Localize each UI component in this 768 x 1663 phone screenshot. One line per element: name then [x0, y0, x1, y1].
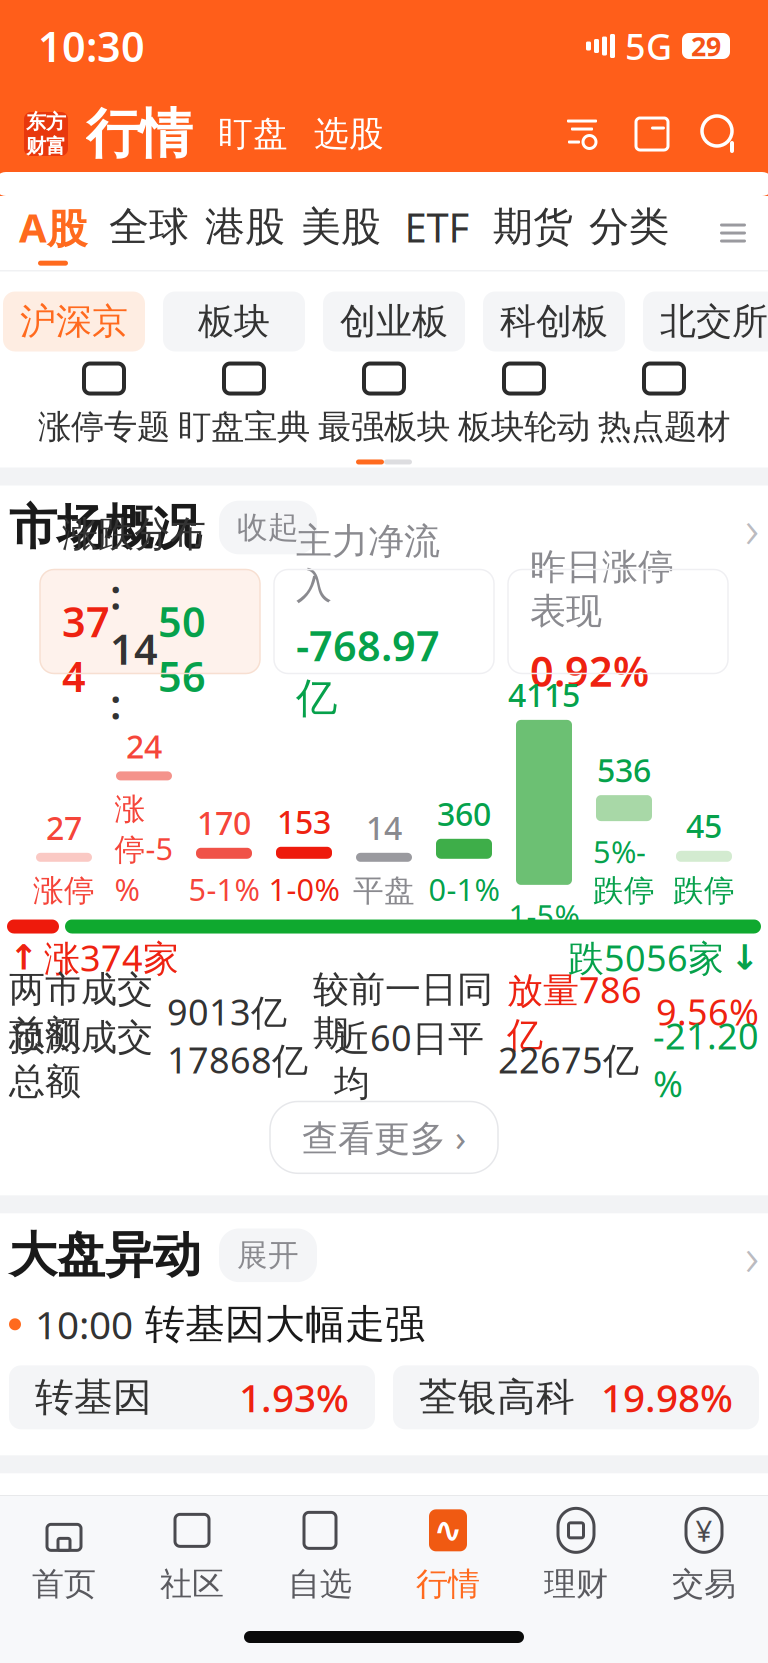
staticText: 153: [277, 800, 331, 843]
staticText: 选股: [314, 113, 384, 155]
button[interactable]: 首页: [0, 1506, 128, 1602]
staticText: 19.98%: [601, 1372, 733, 1423]
staticText: 14: [366, 806, 402, 849]
staticText: 期货: [493, 202, 573, 251]
staticText: :14:: [110, 566, 158, 731]
button[interactable]: 社区: [128, 1506, 256, 1602]
staticText: 5056: [158, 594, 206, 703]
button[interactable]: 港股: [197, 196, 293, 270]
button[interactable]: 大盘异动: [0, 1213, 768, 1297]
staticText: 创业板: [340, 299, 448, 344]
staticText: 沪深京: [20, 299, 128, 344]
button[interactable]: 主力净流入: [274, 569, 494, 673]
button[interactable]: 市场概况: [0, 485, 768, 569]
staticText: 主力净流入: [296, 519, 440, 608]
staticText: ∿: [433, 1511, 462, 1550]
staticText: 0.92%: [530, 643, 649, 698]
staticText: 展开: [237, 1236, 299, 1274]
button[interactable]: 北交所: [643, 291, 768, 351]
staticText: -768.97亿: [296, 618, 440, 724]
staticText: 涨跌分布: [62, 512, 206, 556]
staticText: 536: [597, 749, 651, 791]
staticText: 较前一日同期: [313, 967, 493, 1056]
staticText: ›: [745, 492, 759, 563]
staticText: 自选: [288, 1564, 352, 1604]
button[interactable]: 选股: [288, 113, 384, 155]
button[interactable]: 美股: [293, 196, 389, 270]
button[interactable]: 行业板块: [0, 1473, 768, 1569]
staticText: 盯盘宝典: [178, 406, 310, 447]
button[interactable]: 板块: [163, 291, 305, 351]
staticText: 交易: [672, 1564, 736, 1604]
staticText: 4115: [508, 673, 580, 716]
staticText: 科创板: [500, 299, 608, 344]
button[interactable]: 自选: [256, 1506, 384, 1602]
button[interactable]: 创业板: [323, 291, 465, 351]
button[interactable]: ETF: [389, 196, 485, 270]
staticText: 5%-跌停: [593, 831, 655, 909]
staticText: 荃银高科: [419, 1374, 575, 1421]
button[interactable]: 昨日涨停表现: [508, 569, 728, 673]
staticText: 5-1%: [188, 869, 259, 909]
staticText: 收起: [237, 509, 299, 546]
staticText: 29: [691, 28, 721, 64]
staticText: 行业板块: [9, 1492, 201, 1551]
staticText: 22675亿: [498, 1036, 639, 1083]
staticText: 涨停专题: [38, 406, 170, 447]
staticText: 45: [686, 804, 722, 847]
staticText: 转基因大幅走强: [145, 1300, 425, 1349]
button[interactable]: 行情: [68, 101, 192, 167]
staticText: 分类: [589, 202, 669, 251]
button[interactable]: 更多分类: [707, 196, 759, 270]
staticText: 1-0%: [268, 869, 339, 909]
button[interactable]: 盯盘: [192, 113, 288, 155]
button[interactable]: 涨停专题: [34, 360, 174, 447]
button[interactable]: 期货: [485, 196, 581, 270]
staticText: 行情: [86, 101, 192, 167]
button[interactable]: 板块轮动: [454, 360, 594, 447]
staticText: 374: [62, 594, 110, 703]
button[interactable]: 搜索: [676, 110, 744, 158]
staticText: A股: [19, 200, 87, 254]
staticText: 涨374家: [44, 934, 179, 981]
button[interactable]: 分享: [606, 110, 676, 158]
button[interactable]: 查看更多 ›: [270, 1101, 498, 1173]
staticText: 10:30: [38, 19, 145, 73]
staticText: 9.56%: [656, 988, 759, 1035]
button[interactable]: ¥: [640, 1506, 768, 1602]
button[interactable]: 科创板: [483, 291, 625, 351]
staticText: 17868亿: [167, 1036, 308, 1083]
button[interactable]: 盯盘宝典: [174, 360, 314, 447]
staticText: 9013亿: [167, 988, 287, 1035]
staticText: 全球: [109, 202, 189, 251]
staticText: ›: [745, 1220, 759, 1291]
button[interactable]: 最强板块: [314, 360, 454, 447]
button[interactable]: 东方财富: [24, 112, 68, 156]
staticText: 10:00: [35, 1299, 133, 1350]
staticText: 热点题材: [598, 406, 730, 447]
staticText: 放量786亿: [507, 965, 642, 1057]
staticText: 大盘异动: [9, 1226, 201, 1285]
staticText: 1.93%: [239, 1372, 349, 1423]
button[interactable]: 荃银高科: [393, 1365, 759, 1429]
button[interactable]: 涨跌分布: [40, 569, 260, 673]
staticText: ↑: [9, 938, 38, 977]
button[interactable]: 转基因: [9, 1365, 375, 1429]
button[interactable]: 热点题材: [594, 360, 734, 447]
button[interactable]: 沪深京: [3, 291, 145, 351]
button[interactable]: A股: [5, 196, 101, 270]
staticText: 市场概况: [9, 498, 201, 557]
staticText: 东方: [26, 109, 66, 134]
staticText: 170: [197, 801, 251, 844]
staticText: 0-1%: [428, 869, 499, 909]
staticText: 两市成交总额: [9, 967, 153, 1056]
button[interactable]: 分类: [581, 196, 677, 270]
button[interactable]: ∿: [384, 1506, 512, 1602]
staticText: 平盘: [353, 872, 415, 909]
button[interactable]: 全球: [101, 196, 197, 270]
button[interactable]: 理财: [512, 1506, 640, 1602]
staticText: 预测成交总额: [9, 1015, 153, 1104]
staticText: 近60日平均: [334, 1013, 484, 1105]
staticText: 1-5%: [508, 895, 579, 936]
button[interactable]: 设置: [558, 110, 606, 158]
